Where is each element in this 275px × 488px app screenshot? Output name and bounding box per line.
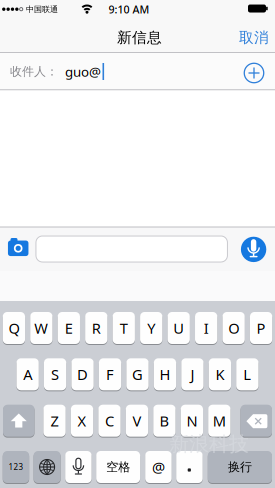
button[interactable]: Q (0, 0, 275, 488)
staticText: J (190, 365, 194, 384)
button[interactable] (0, 0, 275, 488)
staticText: N (186, 411, 197, 430)
staticText: 取消 (239, 28, 269, 46)
staticText: 换行 (228, 460, 252, 474)
button[interactable]: V (0, 0, 275, 488)
staticText: 123 (8, 462, 23, 472)
button[interactable]: S (0, 0, 275, 488)
staticText: S (51, 365, 59, 384)
button[interactable]: X (0, 0, 275, 488)
button[interactable]: R (0, 0, 275, 488)
button[interactable]: N (0, 0, 275, 488)
button[interactable] (0, 0, 275, 488)
staticText: H (159, 365, 170, 384)
staticText: D (77, 365, 88, 384)
staticText: U (173, 318, 184, 338)
button[interactable]: H (0, 0, 275, 488)
staticText: T (120, 318, 128, 338)
staticText: X (77, 411, 86, 430)
staticText: I (204, 318, 209, 338)
button[interactable]: E (0, 0, 275, 488)
button[interactable] (0, 0, 275, 488)
staticText: 收件人： (10, 64, 58, 79)
staticText: C (105, 411, 114, 430)
staticText: R (92, 318, 101, 338)
button[interactable]: W (0, 0, 275, 488)
staticText: W (34, 318, 48, 338)
button[interactable]: G (0, 0, 275, 488)
button[interactable]: 换行 (0, 0, 275, 488)
button[interactable]: A (0, 0, 275, 488)
staticText: M (213, 411, 226, 430)
staticText: G (132, 365, 143, 384)
staticText: 空格 (106, 460, 130, 474)
staticText: V (132, 411, 141, 430)
button[interactable]: I (0, 0, 275, 488)
button[interactable]: P (0, 0, 275, 488)
staticText: O (228, 318, 239, 338)
button[interactable]: Z (0, 0, 275, 488)
button[interactable]: O (0, 0, 275, 488)
staticText: Y (147, 318, 155, 338)
button[interactable] (0, 0, 275, 488)
staticText: 9:10 AM (108, 2, 149, 16)
staticText: B (159, 411, 169, 430)
staticText: @ (152, 457, 165, 477)
button[interactable]: F (0, 0, 275, 488)
button[interactable]: @ (0, 0, 275, 488)
staticText: 新信息 (117, 28, 162, 46)
button[interactable]: L (0, 0, 275, 488)
button[interactable] (0, 0, 275, 488)
staticText: P (257, 318, 266, 338)
button[interactable]: M (0, 0, 275, 488)
button[interactable]: 取消 (0, 0, 275, 488)
button[interactable]: 空格 (0, 0, 275, 488)
button[interactable]: T (0, 0, 275, 488)
button[interactable]: 123 (0, 0, 275, 488)
button[interactable] (0, 0, 275, 488)
button[interactable]: J (0, 0, 275, 488)
staticText: guo@ (65, 63, 101, 80)
button[interactable]: U (0, 0, 275, 488)
staticText: Q (8, 318, 19, 338)
button[interactable] (0, 0, 275, 488)
staticText: K (215, 365, 224, 384)
button[interactable] (0, 0, 275, 488)
button[interactable]: B (0, 0, 275, 488)
button[interactable]: K (0, 0, 275, 488)
button[interactable]: C (0, 0, 275, 488)
button[interactable]: D (0, 0, 275, 488)
staticText: E (65, 318, 73, 338)
staticText: 中国联通 (26, 4, 58, 14)
staticText: F (106, 365, 114, 384)
button[interactable]: Y (0, 0, 275, 488)
staticText: Z (50, 411, 58, 430)
button[interactable] (0, 0, 275, 488)
staticText: L (243, 365, 251, 384)
staticText: A (23, 365, 32, 384)
staticText: 新浪科技 (169, 432, 249, 456)
